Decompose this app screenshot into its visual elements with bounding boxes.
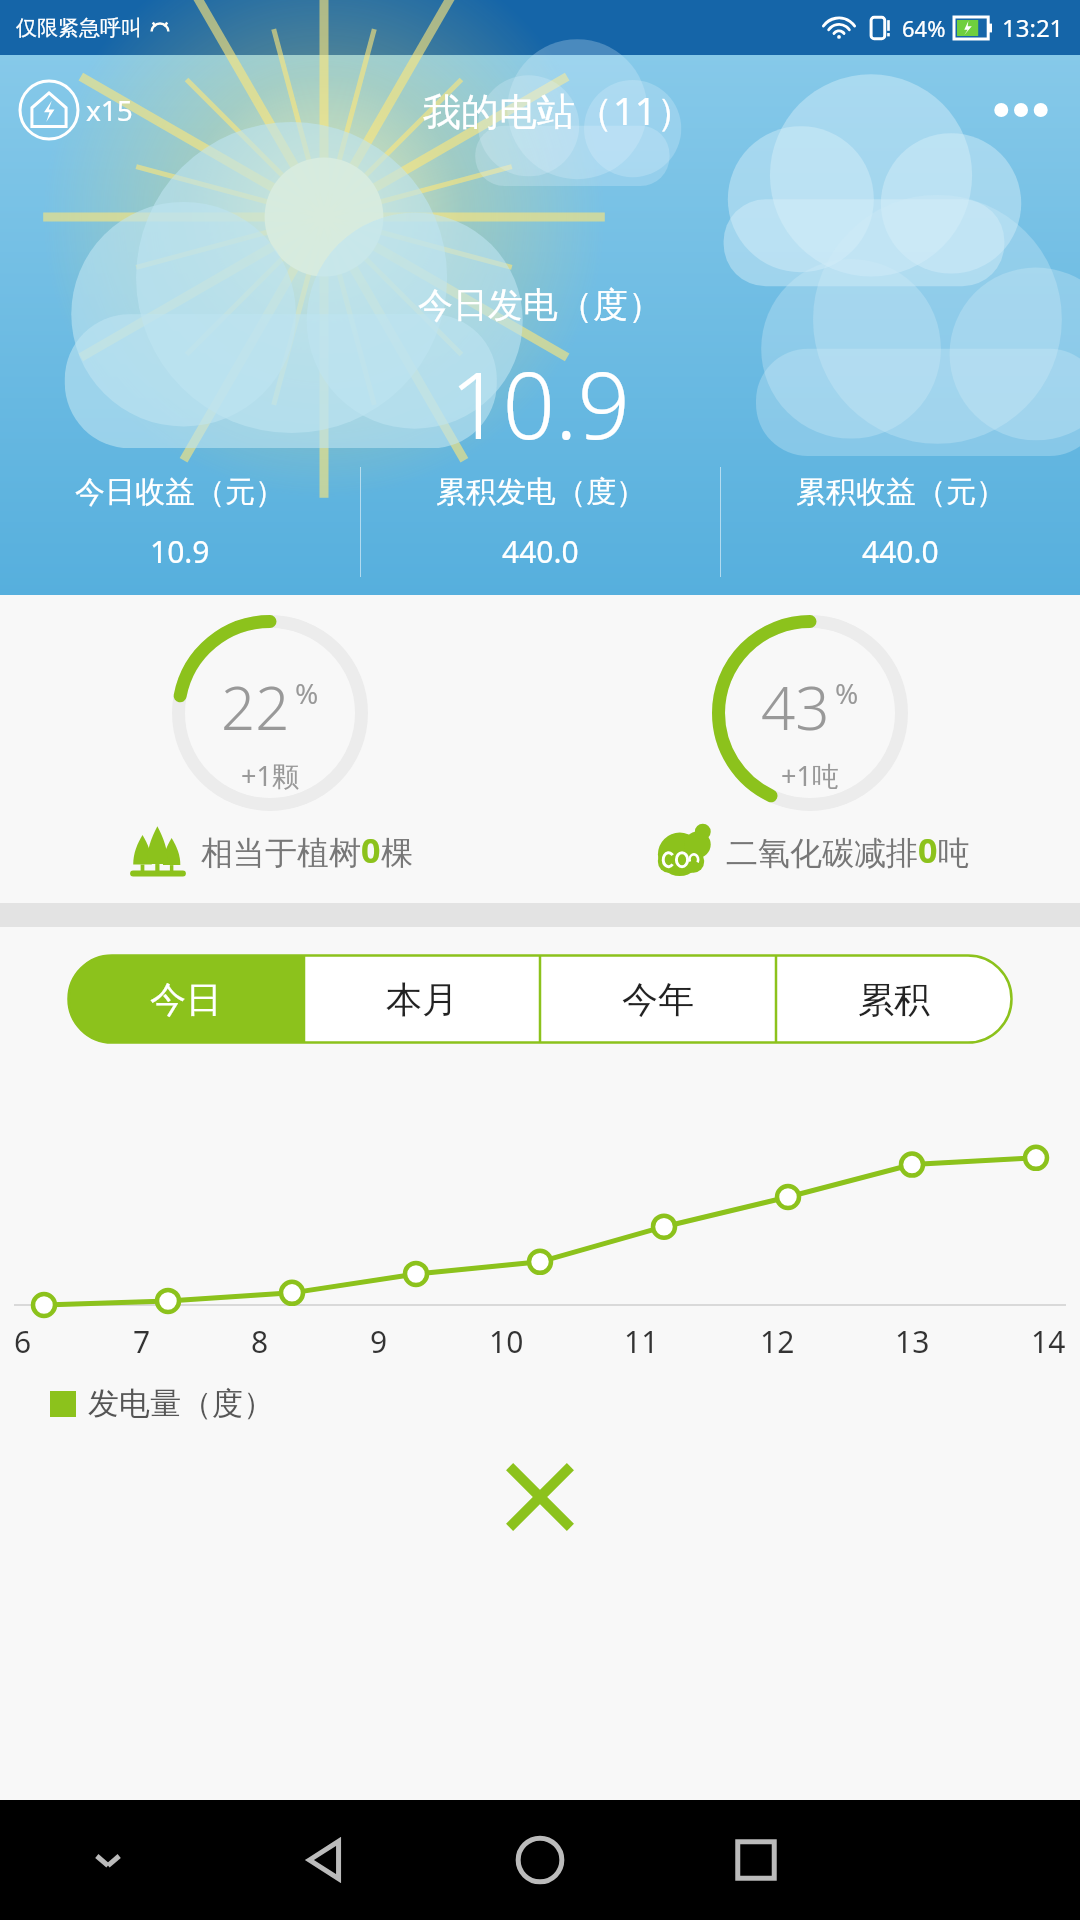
staticText: 6 [14, 1321, 32, 1362]
staticText: 0 [361, 827, 381, 873]
button[interactable]: 累积 [776, 955, 1012, 1043]
button[interactable]: 43 [540, 613, 1080, 813]
button[interactable]: More options [986, 75, 1056, 145]
staticText: 今日收益（元） [75, 473, 285, 511]
staticText: 二氧化碳减排 [726, 833, 918, 873]
staticText: 10.9 [150, 531, 210, 572]
staticText: 11 [624, 1321, 659, 1362]
staticText: 13 [895, 1321, 930, 1362]
staticText: 今年 [622, 977, 694, 1022]
staticText: % [295, 674, 319, 712]
staticText: 累积发电（度） [436, 473, 646, 511]
staticText: 64% [902, 13, 946, 43]
button[interactable]: 相当于植树 [127, 823, 413, 877]
staticText: x15 [86, 91, 133, 129]
staticText: 7 [133, 1321, 151, 1362]
staticText: 13:21 [1002, 11, 1064, 44]
staticText: 我的电站（11） [423, 84, 695, 136]
staticText: 吨 [938, 833, 970, 873]
staticText: 本月 [386, 977, 458, 1022]
button[interactable]: x15 [18, 79, 133, 141]
staticText: 棵 [381, 833, 413, 873]
staticText: 22 [221, 666, 290, 748]
staticText: 12 [760, 1321, 795, 1362]
button[interactable]: 今日收益（元） [0, 469, 360, 576]
staticText: 43 [761, 666, 830, 748]
button[interactable]: 二氧化碳减排 [650, 823, 970, 877]
staticText: 累积 [858, 977, 930, 1022]
staticText: 相当于植树 [201, 833, 361, 873]
staticText: +1颗 [241, 757, 299, 794]
button[interactable]: Back [216, 1800, 432, 1920]
staticText: 9 [370, 1321, 388, 1362]
staticText: 440.0 [862, 531, 939, 572]
button[interactable]: 本月 [304, 955, 540, 1043]
button[interactable]: Close [490, 1447, 590, 1547]
staticText: 8 [251, 1321, 269, 1362]
staticText: 440.0 [502, 531, 579, 572]
button[interactable]: Home [432, 1800, 648, 1920]
button[interactable]: Hide keyboard [0, 1800, 216, 1920]
staticText: 14 [1031, 1321, 1066, 1362]
staticText: 10 [489, 1321, 524, 1362]
staticText: 今日发电（度） [418, 283, 663, 327]
staticText: 10.9 [450, 341, 631, 466]
staticText: 累积收益（元） [796, 473, 1006, 511]
button[interactable]: 累积发电（度） [361, 469, 720, 576]
button[interactable]: 累积收益（元） [721, 469, 1080, 576]
button[interactable]: 今年 [540, 955, 776, 1043]
button[interactable]: 今日 [68, 955, 304, 1043]
button[interactable]: Recent apps [648, 1800, 864, 1920]
staticText: % [835, 674, 859, 712]
staticText: 0 [918, 827, 938, 873]
staticText: +1吨 [781, 757, 839, 794]
button[interactable]: 22 [0, 613, 540, 813]
staticText: 今日 [150, 977, 222, 1022]
staticText: 发电量（度） [88, 1384, 274, 1423]
staticText: 仅限紧急呼叫 [16, 15, 142, 41]
